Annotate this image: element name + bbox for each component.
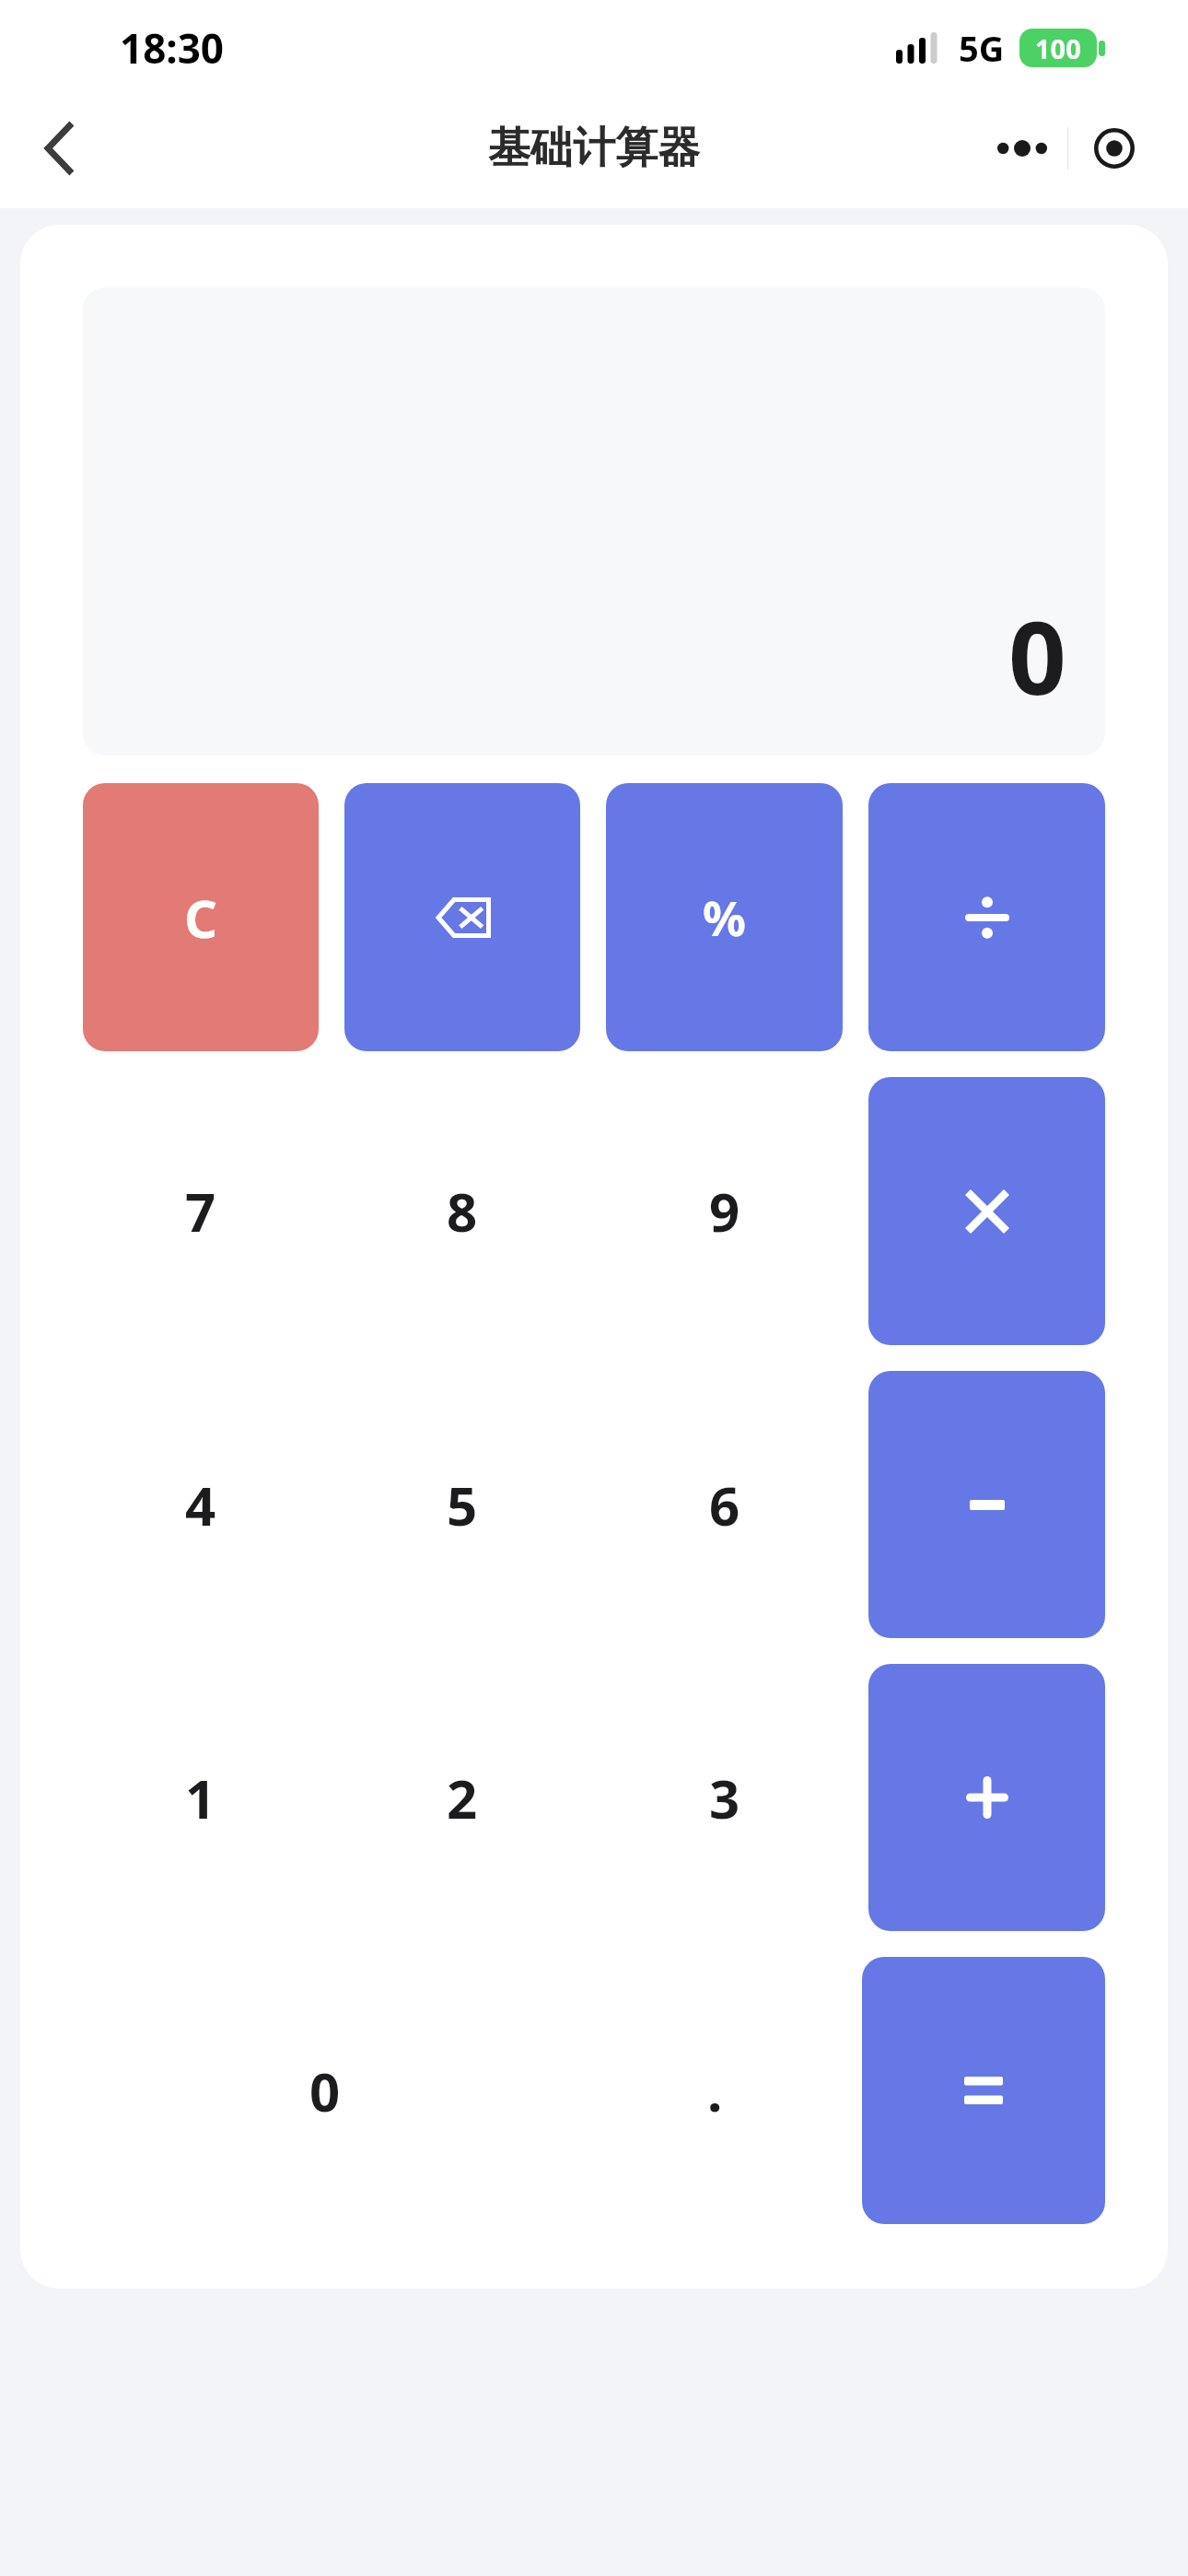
button[interactable]: 1	[83, 1664, 319, 1931]
button[interactable]: More options	[976, 113, 1067, 183]
button[interactable]: 4	[83, 1371, 319, 1638]
button[interactable]: C	[83, 783, 319, 1051]
staticText: %	[703, 884, 746, 950]
staticText: 5G	[959, 24, 1005, 72]
button[interactable]: 2	[344, 1664, 580, 1931]
staticText: 7	[185, 1175, 216, 1247]
staticText: 9	[709, 1175, 740, 1247]
button[interactable]: Plus	[868, 1664, 1105, 1931]
button[interactable]: Back	[0, 88, 120, 208]
staticText: 5	[447, 1469, 478, 1541]
button[interactable]: Close mini program	[1068, 113, 1160, 183]
button[interactable]: 9	[606, 1077, 843, 1345]
button[interactable]: Minus	[868, 1371, 1105, 1638]
button[interactable]: Equals	[862, 1957, 1105, 2224]
staticText: .	[707, 2055, 723, 2127]
button[interactable]: Backspace	[344, 783, 580, 1051]
button[interactable]: 5	[344, 1371, 580, 1638]
staticText: 基础计算器	[488, 122, 700, 175]
button[interactable]: 7	[83, 1077, 319, 1345]
staticText: 3	[709, 1762, 740, 1834]
button[interactable]: 3	[606, 1664, 843, 1931]
staticText: 0	[1008, 586, 1066, 724]
button[interactable]: Multiply	[868, 1077, 1105, 1345]
staticText: 6	[709, 1469, 740, 1541]
button[interactable]: 0	[83, 1957, 567, 2224]
button[interactable]: .	[593, 1957, 836, 2224]
staticText: 2	[447, 1762, 478, 1834]
button[interactable]: 8	[344, 1077, 580, 1345]
staticText: 1	[185, 1762, 216, 1834]
staticText: 18:30	[120, 20, 225, 76]
staticText: 4	[185, 1469, 216, 1541]
staticText: 100	[1035, 30, 1081, 66]
button[interactable]: Divide	[868, 783, 1105, 1051]
button[interactable]: %	[606, 783, 843, 1051]
staticText: 0	[309, 2055, 341, 2127]
staticText: C	[184, 883, 217, 953]
button[interactable]: 6	[606, 1371, 843, 1638]
staticText: 8	[447, 1175, 478, 1247]
